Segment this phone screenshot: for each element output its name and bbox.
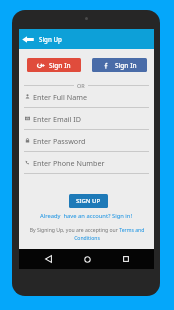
staticText: Sign Up — [39, 35, 62, 43]
button[interactable]: Already have an account? Sign in! — [38, 210, 135, 222]
button[interactable]: Home — [80, 252, 94, 266]
button[interactable]: Back — [22, 32, 34, 46]
button[interactable]: Enter Password — [24, 130, 149, 151]
button[interactable]: Sign In — [92, 58, 147, 72]
staticText: Enter Phone Number — [33, 158, 105, 168]
staticText: Already have an account? Sign in! — [40, 212, 133, 220]
staticText: Sign In — [49, 61, 71, 70]
button[interactable]: SIGN UP — [69, 194, 108, 208]
button[interactable]: Enter Email ID — [24, 108, 149, 129]
staticText: Enter Email ID — [33, 114, 81, 124]
staticText: OR — [77, 82, 85, 89]
staticText: Enter Password — [33, 136, 86, 146]
button[interactable]: Enter Full Name — [24, 86, 149, 107]
button[interactable]: Recents — [119, 252, 133, 266]
staticText: Enter Full Name — [33, 92, 87, 102]
button[interactable]: Sign In — [27, 58, 81, 72]
staticText: SIGN UP — [76, 197, 101, 205]
staticText: Sign In — [115, 61, 137, 70]
button[interactable]: Back — [41, 252, 55, 266]
button[interactable]: Enter Phone Number — [24, 152, 149, 173]
staticText: By Signing Up, you are accepting our Ter… — [28, 227, 146, 241]
